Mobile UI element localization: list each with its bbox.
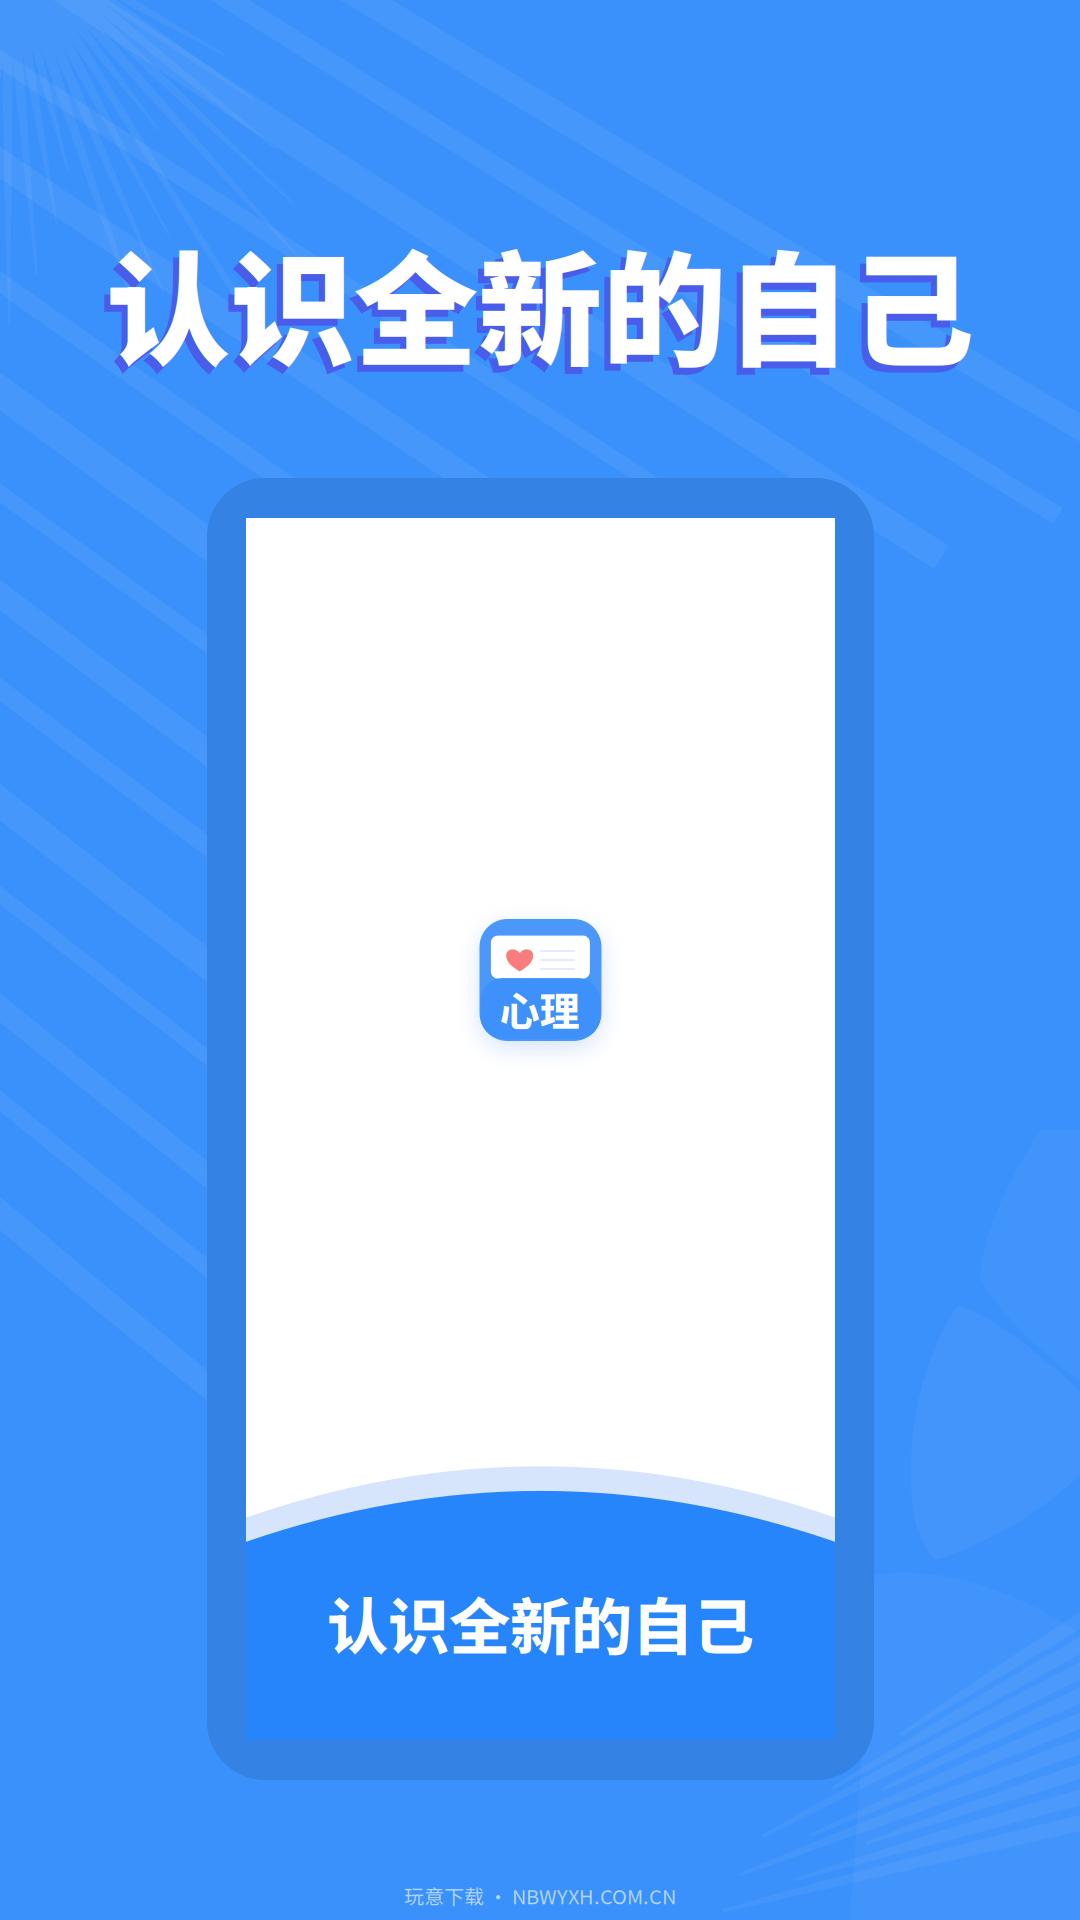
staticText: 认识全新的自己 — [100, 219, 968, 399]
button[interactable]: 玩意下载 • NBWYXH.COM.CN — [0, 1881, 1080, 1910]
staticText: 认识全新的自己 — [327, 1578, 754, 1667]
button[interactable]: 心理 app icon — [479, 919, 601, 1041]
staticText: 玩意下载 • NBWYXH.COM.CN — [404, 1881, 676, 1910]
staticText: 认识全新的自己 — [106, 212, 974, 392]
button[interactable]: App preview — [207, 478, 874, 1780]
staticText: 心理 — [500, 980, 580, 1038]
